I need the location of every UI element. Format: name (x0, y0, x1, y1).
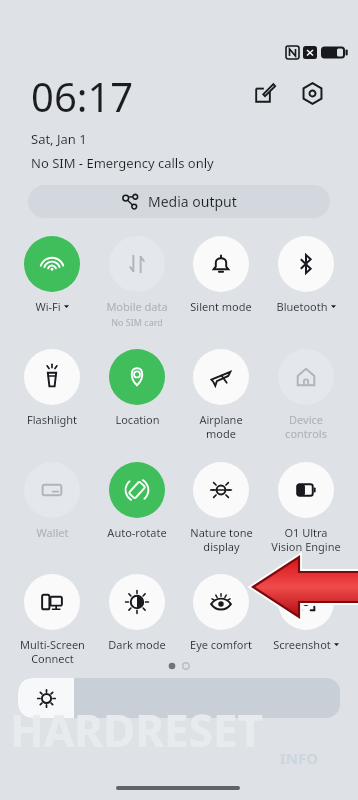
staticText: INFO (280, 748, 319, 768)
staticText: Dark mode (108, 637, 166, 652)
button[interactable]: Flashlight (10, 349, 94, 427)
staticText: No SIM card (111, 316, 163, 328)
staticText: Screenshot (273, 637, 331, 652)
button[interactable]: Dark mode (95, 574, 179, 652)
staticText: Flashlight (27, 412, 77, 427)
staticText: Eye comfort (190, 637, 252, 652)
button[interactable]: Multi-Screen Connect (10, 574, 94, 666)
staticText: Multi-Screen Connect (20, 637, 85, 666)
staticText: 06:17 (31, 69, 134, 123)
button[interactable]: Eye comfort (179, 574, 263, 652)
staticText: Mobile data (106, 299, 168, 314)
staticText: Sat, Jan 1 (31, 130, 87, 148)
staticText: Wallet (36, 525, 69, 540)
button[interactable]: Brightness (18, 678, 340, 718)
staticText: Bluetooth (276, 299, 328, 314)
button[interactable]: Mobile data (95, 236, 179, 328)
button[interactable]: Settings (296, 77, 328, 109)
button[interactable]: O1 Ultra Vision Engine (264, 462, 348, 554)
button[interactable]: Media output (28, 185, 330, 218)
staticText: Silent mode (190, 299, 252, 314)
button[interactable]: Device controls (264, 349, 348, 441)
staticText: Device controls (285, 412, 327, 441)
button[interactable]: Edit quick settings (249, 77, 281, 109)
staticText: No SIM - Emergency calls only (31, 154, 214, 172)
staticText: Airplane mode (199, 412, 243, 441)
button[interactable]: Wi-Fi (10, 236, 94, 314)
staticText: Media output (148, 192, 237, 211)
staticText: O1 Ultra Vision Engine (271, 525, 341, 554)
button[interactable]: Wallet (10, 462, 94, 540)
button[interactable]: Airplane mode (179, 349, 263, 441)
staticText: Nature tone display (190, 525, 253, 554)
button[interactable]: Silent mode (179, 236, 263, 314)
button[interactable]: Auto-rotate (95, 462, 179, 540)
staticText: Location (115, 412, 160, 427)
button[interactable]: Screenshot (264, 574, 348, 652)
staticText: Auto-rotate (107, 525, 167, 540)
staticText: Wi-Fi (35, 299, 61, 314)
button[interactable]: Nature tone display (179, 462, 263, 554)
button[interactable]: Location (95, 349, 179, 427)
button[interactable]: Bluetooth (264, 236, 348, 314)
staticText: HARDRESET (10, 700, 263, 760)
